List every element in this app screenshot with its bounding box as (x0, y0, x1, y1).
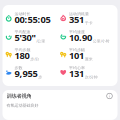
staticText: 180 (14, 49, 29, 62)
staticText: 有氧运动基础良好 (6, 103, 38, 108)
staticText: 5'30" (14, 31, 35, 44)
staticText: 运动消耗量 (69, 11, 89, 16)
staticText: 次/分钟 (85, 74, 98, 79)
staticText: 9,955 (14, 67, 37, 80)
staticText: 厘米 (85, 57, 93, 61)
staticText: 351 (69, 13, 84, 26)
staticText: 步数 (14, 65, 22, 70)
staticText: 131 (69, 67, 84, 80)
staticText: /公里 (36, 38, 45, 43)
staticText: 平均速度 (69, 29, 85, 34)
staticText: 运动时长 (14, 11, 30, 16)
staticText: 平均配速 (14, 29, 30, 34)
button[interactable]: Info (105, 92, 113, 100)
staticText: 平均步频 (14, 47, 30, 52)
staticText: 训练者视角 (6, 93, 31, 99)
staticText: 公里/小时 (93, 38, 110, 43)
staticText: 10.90 (69, 31, 92, 44)
staticText: i (109, 93, 110, 99)
staticText: 101 (69, 49, 84, 62)
staticText: 千卡 (85, 21, 93, 25)
staticText: 平均步幅 (69, 47, 85, 52)
staticText: 平均心率 (69, 65, 85, 70)
staticText: 00:55:05 (14, 13, 50, 26)
staticText: 步/分 (30, 56, 39, 61)
staticText: 步 (38, 75, 42, 79)
